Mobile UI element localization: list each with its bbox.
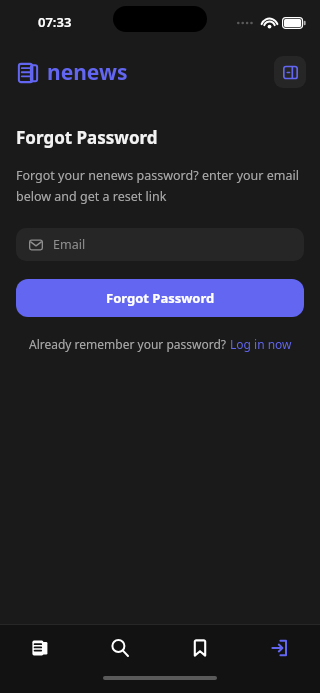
button[interactable]: Email	[16, 228, 304, 261]
staticText: Forgot Password	[106, 289, 215, 307]
staticText: Email	[53, 236, 86, 253]
staticText: nenews	[47, 58, 128, 87]
button[interactable]: nenews	[16, 58, 128, 87]
button[interactable]: News	[0, 625, 80, 671]
button[interactable]: Log in	[240, 625, 320, 671]
staticText: Forgot your nenews password? enter your …	[16, 167, 304, 205]
button[interactable]: Forgot Password	[16, 279, 304, 317]
staticText: Forgot Password	[16, 126, 158, 149]
staticText: 07:33	[38, 13, 72, 31]
button[interactable]: Toggle sidebar	[274, 56, 306, 88]
button[interactable]: Log in now	[230, 336, 292, 352]
button[interactable]: Search	[80, 625, 160, 671]
staticText: Already remember your password?	[29, 336, 230, 352]
button[interactable]: Bookmarks	[160, 625, 240, 671]
